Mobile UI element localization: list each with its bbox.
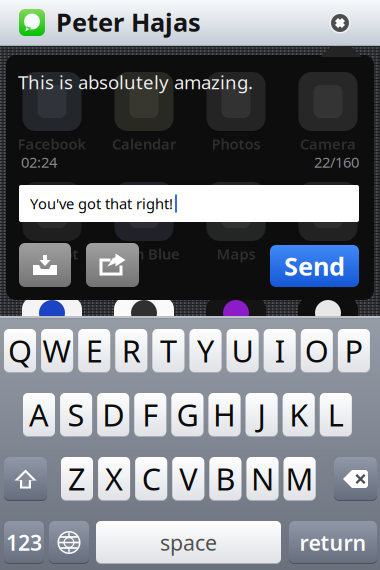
button[interactable]: H: [208, 393, 240, 437]
button[interactable]: A: [23, 393, 55, 437]
button[interactable]: Delete: [334, 457, 377, 501]
button[interactable]: B: [209, 457, 241, 501]
staticText: O: [305, 330, 329, 371]
staticText: Q: [8, 330, 32, 371]
staticText: G: [176, 394, 198, 435]
staticText: Alien Blue: [108, 244, 180, 263]
button[interactable]: P: [338, 329, 370, 373]
button[interactable]: T: [152, 329, 184, 373]
button[interactable]: space: [96, 521, 281, 564]
staticText: D: [102, 394, 124, 435]
staticText: 02:24: [21, 152, 57, 172]
button[interactable]: return: [289, 521, 377, 564]
button[interactable]: E: [78, 329, 110, 373]
staticText: R: [122, 330, 141, 371]
staticText: Photos: [211, 134, 260, 153]
button[interactable]: Z: [61, 457, 93, 501]
staticText: I: [275, 330, 285, 371]
staticText: Y: [197, 330, 214, 371]
staticText: L: [328, 394, 344, 435]
button[interactable]: L: [320, 393, 352, 437]
staticText: U: [232, 330, 254, 371]
staticText: Calendar: [112, 134, 176, 153]
button[interactable]: C: [135, 457, 167, 501]
button[interactable]: U: [227, 329, 259, 373]
button[interactable]: D: [97, 393, 129, 437]
staticText: Send: [284, 249, 345, 283]
button[interactable]: I: [264, 329, 296, 373]
button[interactable]: F: [134, 393, 166, 437]
button[interactable]: K: [283, 393, 315, 437]
button[interactable]: Close: [325, 8, 355, 38]
button[interactable]: X: [98, 457, 130, 501]
staticText: S: [68, 394, 85, 435]
staticText: Maps: [216, 244, 255, 263]
button[interactable]: G: [171, 393, 203, 437]
button[interactable]: S: [60, 393, 92, 437]
button[interactable]: Next keyboard: [49, 521, 89, 564]
button[interactable]: W: [41, 329, 73, 373]
button[interactable]: J: [246, 393, 278, 437]
staticText: M: [286, 458, 314, 499]
staticText: E: [86, 330, 103, 371]
staticText: 22/160: [314, 152, 359, 172]
staticText: Z: [68, 458, 86, 499]
staticText: P: [344, 330, 363, 371]
staticText: Shine: [308, 244, 347, 263]
staticText: F: [142, 394, 158, 435]
button[interactable]: Save draft: [19, 243, 71, 287]
button[interactable]: Shift: [4, 457, 47, 501]
staticText: Camera: [300, 134, 356, 153]
staticText: J: [258, 394, 266, 435]
staticText: You've got that right!: [30, 194, 173, 213]
button[interactable]: V: [172, 457, 204, 501]
button[interactable]: 123: [4, 521, 44, 564]
staticText: X: [105, 458, 123, 499]
staticText: Calcbot: [25, 244, 78, 263]
staticText: Facebook: [17, 134, 86, 153]
button[interactable]: Y: [189, 329, 221, 373]
button[interactable]: N: [246, 457, 278, 501]
staticText: K: [289, 394, 308, 435]
staticText: 123: [6, 528, 42, 557]
button[interactable]: Share: [86, 243, 139, 287]
staticText: B: [215, 458, 235, 499]
staticText: C: [142, 458, 161, 499]
staticText: A: [29, 394, 49, 435]
staticText: return: [299, 528, 366, 557]
staticText: H: [213, 394, 236, 435]
button[interactable]: O: [301, 329, 333, 373]
staticText: Peter Hajas: [56, 5, 201, 39]
staticText: T: [160, 330, 177, 371]
staticText: space: [160, 528, 217, 557]
button[interactable]: R: [115, 329, 147, 373]
button[interactable]: Send: [270, 245, 359, 287]
staticText: W: [43, 330, 72, 371]
button[interactable]: Q: [4, 329, 36, 373]
staticText: V: [179, 458, 197, 499]
staticText: N: [251, 458, 274, 499]
button[interactable]: M: [284, 457, 316, 501]
staticText: This is absolutely amazing.: [18, 70, 253, 94]
